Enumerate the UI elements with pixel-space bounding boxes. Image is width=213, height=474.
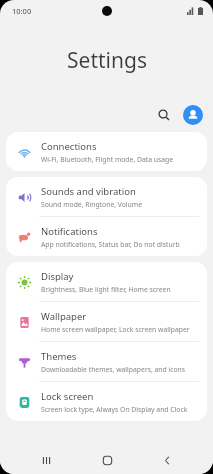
button[interactable]: Back	[152, 446, 182, 474]
button[interactable]: Notifications	[6, 217, 207, 256]
button[interactable]: Sounds and vibration	[6, 177, 207, 216]
staticText: Brightness, Blue light filter, Home scre…	[41, 285, 171, 294]
staticText: Connections	[41, 140, 97, 153]
staticText: 10:00	[12, 6, 32, 16]
button[interactable]: Lock screen	[6, 382, 207, 421]
staticText: Screen lock type, Always On Display and …	[41, 405, 199, 414]
button[interactable]: Recent apps	[31, 446, 61, 474]
button[interactable]: Display	[6, 262, 207, 301]
staticText: Home screen wallpaper, Lock screen wallp…	[41, 325, 190, 334]
button[interactable]: Account	[183, 105, 203, 125]
button[interactable]: Themes	[6, 342, 207, 381]
staticText: Sound mode, Ringtone, Volume	[41, 200, 143, 209]
staticText: App notifications, Status bar, Do not di…	[41, 240, 180, 249]
staticText: Settings	[67, 46, 147, 75]
staticText: Wi-Fi, Bluetooth, Flight mode, Data usag…	[41, 155, 174, 164]
staticText: Notifications	[41, 225, 98, 238]
button[interactable]: Search settings	[151, 102, 177, 128]
staticText: Lock screen	[41, 390, 94, 403]
staticText: Downloadable themes, wallpapers, and ico…	[41, 365, 186, 374]
button[interactable]: Home	[92, 446, 122, 474]
button[interactable]: Wallpaper	[6, 302, 207, 341]
staticText: Display	[41, 270, 74, 283]
staticText: Sounds and vibration	[41, 185, 136, 198]
staticText: Wallpaper	[41, 310, 87, 323]
button[interactable]: Connections	[6, 132, 207, 171]
staticText: Themes	[41, 350, 77, 363]
